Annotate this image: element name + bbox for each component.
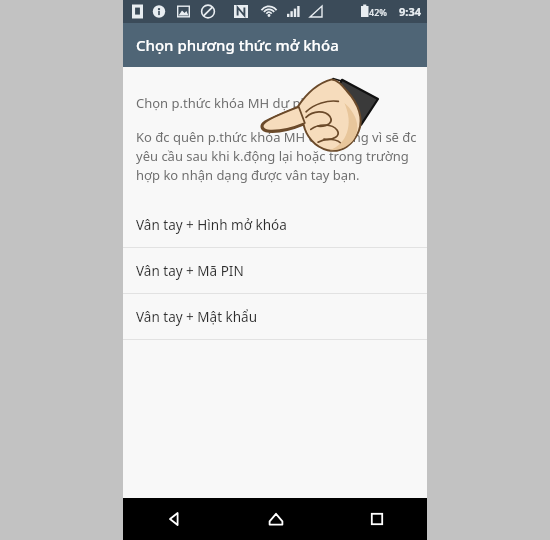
button[interactable]: Home: [225, 498, 326, 540]
staticText: 42%: [369, 6, 387, 18]
staticText: 9:34: [399, 4, 421, 19]
staticText: Chọn p.thức khóa MH dự phòng.: [136, 94, 336, 112]
staticText: Vân tay + Hình mở khóa: [136, 216, 287, 234]
button[interactable]: Back: [123, 498, 225, 540]
staticText: Ko đc quên p.thức khóa MH dự phòng vì sẽ…: [136, 128, 417, 184]
button[interactable]: Vân tay + Mã PIN: [123, 248, 427, 293]
staticText: Chọn phương thức mở khóa: [136, 35, 339, 55]
staticText: Vân tay + Mật khẩu: [136, 308, 258, 326]
button[interactable]: Vân tay + Hình mở khóa: [123, 202, 427, 247]
button[interactable]: Recent apps: [326, 498, 427, 540]
staticText: Vân tay + Mã PIN: [136, 262, 244, 280]
button[interactable]: Vân tay + Mật khẩu: [123, 294, 427, 339]
